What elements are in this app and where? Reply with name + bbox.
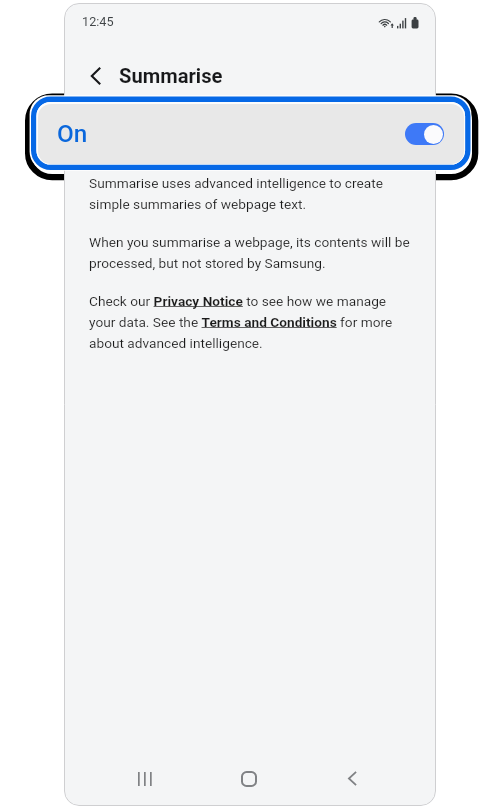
staticText: Summarise — [119, 64, 223, 88]
button[interactable]: Back — [330, 763, 374, 794]
button[interactable]: On — [38, 104, 464, 164]
staticText: Check our Privacy Notice to see how we m… — [89, 293, 413, 351]
button[interactable]: Back — [80, 60, 112, 92]
staticText: On — [57, 119, 88, 147]
staticText: When you summarise a webpage, its conten… — [89, 234, 413, 271]
staticText: 12:45 — [82, 14, 114, 29]
button[interactable]: Home — [227, 763, 271, 794]
staticText: Summarise uses advanced intelligence to … — [89, 175, 413, 212]
button[interactable]: Recent apps — [123, 763, 167, 794]
button[interactable]: Toggle Summarise on — [405, 123, 444, 145]
